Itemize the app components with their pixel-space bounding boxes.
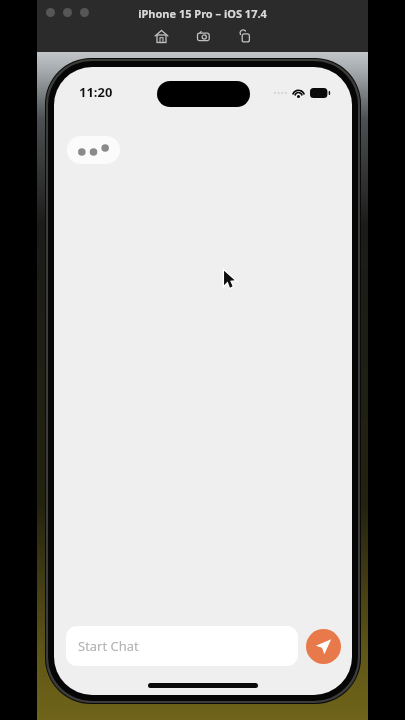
button[interactable]: Rotate [235, 26, 255, 46]
staticText: Start Chat [78, 637, 139, 655]
staticText: 11:20 [79, 83, 113, 101]
button[interactable]: Window control [80, 8, 89, 17]
button[interactable]: Screenshot [193, 26, 213, 46]
button[interactable]: Send [306, 629, 341, 664]
button[interactable]: Window control [63, 8, 72, 17]
button[interactable]: Assistant is typing [67, 136, 120, 164]
staticText: iPhone 15 Pro – iOS 17.4 [37, 6, 368, 21]
button[interactable]: Start Chat [66, 626, 298, 666]
button[interactable]: Home [151, 26, 171, 46]
button[interactable]: Window control [46, 8, 55, 17]
